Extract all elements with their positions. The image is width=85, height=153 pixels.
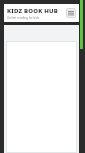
staticText: Online reading for kids — [7, 16, 40, 20]
button[interactable]: Open menu — [66, 8, 76, 18]
button[interactable]: KIDZ BOOK HUB — [7, 7, 66, 20]
button[interactable] — [6, 41, 77, 153]
staticText: KIDZ BOOK HUB — [7, 7, 58, 15]
